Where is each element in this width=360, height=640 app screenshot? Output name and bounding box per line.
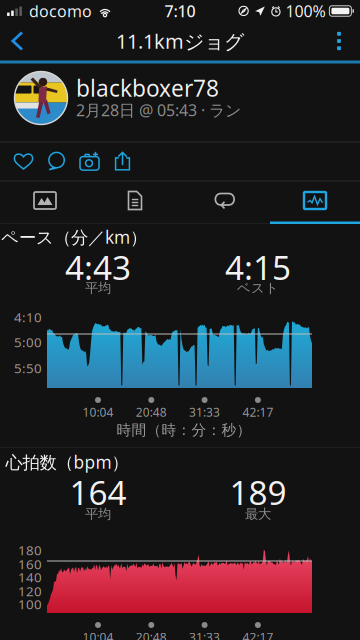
- staticText: 42:17: [242, 404, 273, 420]
- staticText: 100%: [285, 0, 325, 22]
- staticText: ベスト: [237, 280, 279, 296]
- button[interactable]: More: [318, 24, 360, 58]
- staticText: 10:04: [82, 629, 113, 640]
- staticText: 心拍数（bpm）: [5, 450, 128, 473]
- staticText: ペース（分／km）: [1, 225, 147, 248]
- staticText: 42:17: [242, 629, 273, 640]
- staticText: 5:00: [14, 333, 42, 351]
- button[interactable]: Map: [0, 179, 90, 221]
- staticText: 5:50: [14, 359, 42, 377]
- staticText: 20:48: [136, 404, 167, 420]
- staticText: 100: [18, 595, 42, 613]
- staticText: 4:10: [14, 308, 42, 326]
- staticText: 120: [18, 582, 42, 600]
- button[interactable]: Share: [106, 143, 139, 178]
- button[interactable]: Charts: [270, 179, 360, 221]
- button[interactable]: Laps: [180, 179, 270, 221]
- staticText: 2月28日 @ 05:43 · ラン: [76, 99, 241, 121]
- staticText: 31:33: [189, 404, 220, 420]
- staticText: 160: [18, 555, 42, 573]
- staticText: docomo: [29, 0, 92, 22]
- staticText: 180: [18, 541, 42, 559]
- button[interactable]: Add photo: [73, 143, 106, 178]
- staticText: 時間（時：分：秒）: [116, 421, 251, 439]
- staticText: 平均: [85, 280, 111, 296]
- staticText: 189: [229, 470, 286, 514]
- staticText: 11.1kmジョグ: [116, 28, 244, 54]
- staticText: 7:10: [164, 0, 195, 22]
- staticText: 10:04: [82, 404, 113, 420]
- staticText: 20:48: [136, 629, 167, 640]
- staticText: 最大: [245, 506, 271, 522]
- staticText: 4:15: [225, 245, 291, 289]
- button[interactable]: Like: [7, 143, 40, 178]
- button[interactable]: Details: [90, 179, 180, 221]
- button[interactable]: Back: [0, 24, 35, 58]
- staticText: blackboxer78: [76, 73, 219, 103]
- staticText: 31:33: [189, 629, 220, 640]
- staticText: 平均: [85, 506, 111, 522]
- staticText: 4:43: [65, 245, 131, 289]
- staticText: 140: [18, 568, 42, 586]
- button[interactable]: Comment: [40, 143, 73, 178]
- staticText: 164: [69, 470, 126, 514]
